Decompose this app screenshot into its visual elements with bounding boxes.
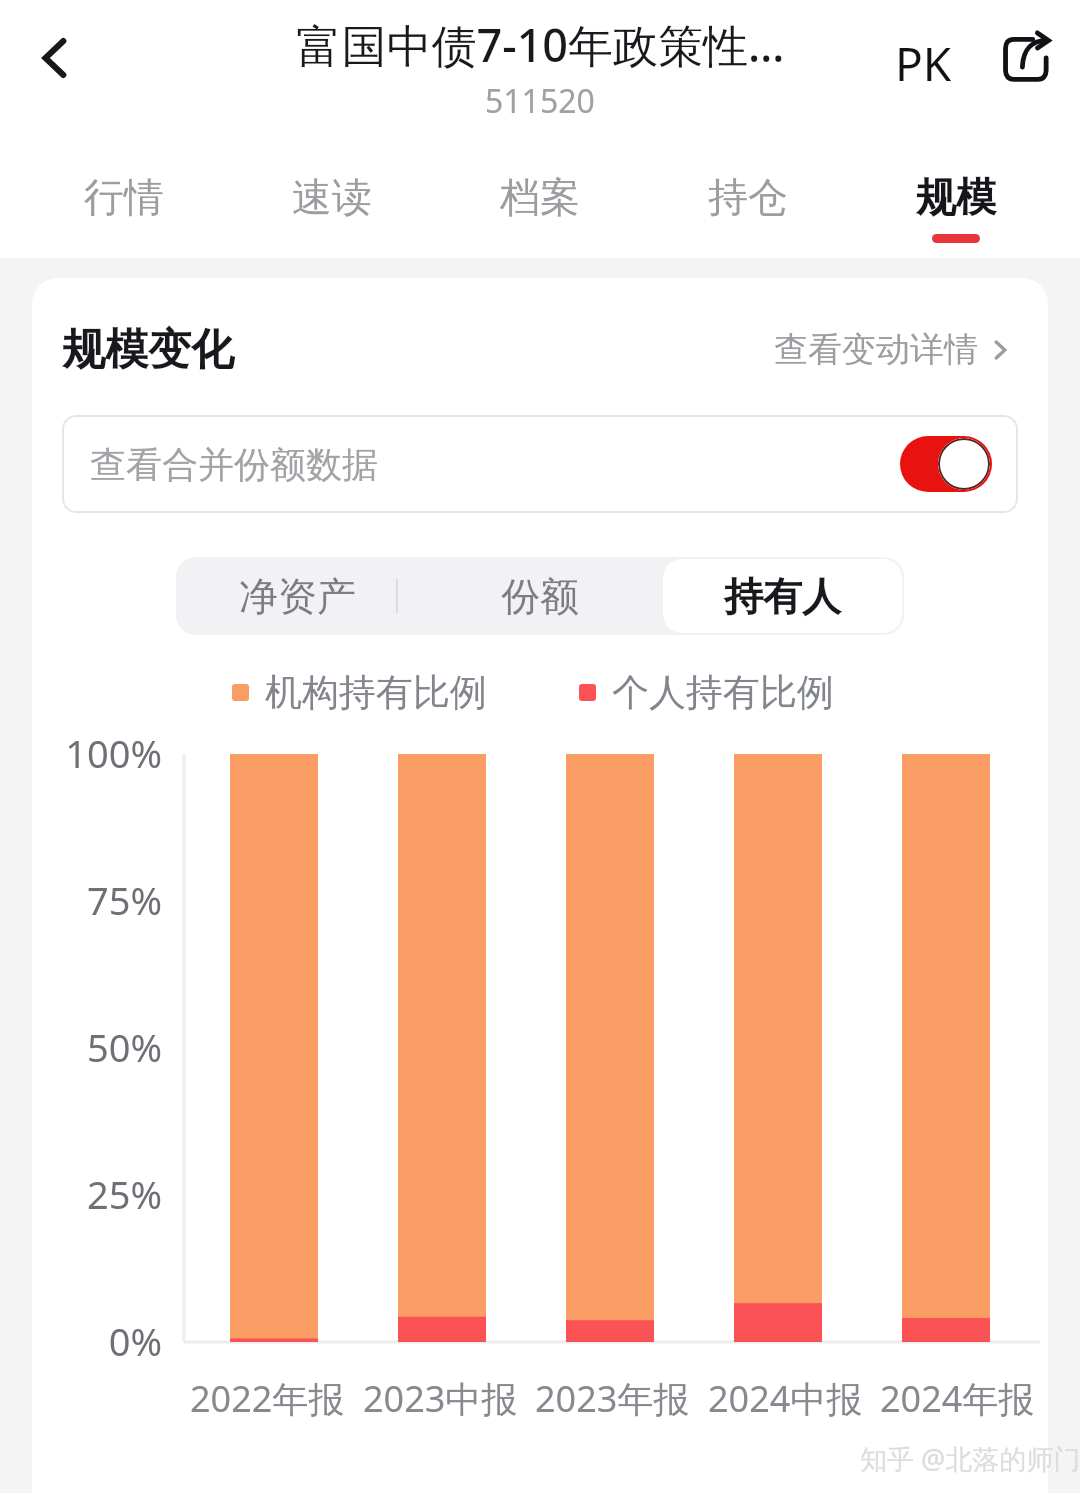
staticText: 查看变动详情 xyxy=(774,328,978,371)
button[interactable]: Back xyxy=(14,16,98,100)
staticText: 2023中报 xyxy=(363,1374,518,1423)
staticText: 份额 xyxy=(501,572,579,621)
staticText: 档案 xyxy=(500,172,580,222)
button[interactable]: 行情 xyxy=(84,150,164,234)
button[interactable]: 速读 xyxy=(292,150,372,234)
staticText: 查看合并份额数据 xyxy=(90,442,378,487)
staticText: 个人持有比例 xyxy=(612,669,834,716)
staticText: 净资产 xyxy=(239,572,356,621)
button[interactable]: 持有人 xyxy=(663,559,902,633)
staticText: 知乎 @北落的师门 xyxy=(860,1440,1080,1477)
staticText: 富国中债7-10年政策性… xyxy=(296,14,785,75)
staticText: 75% xyxy=(86,874,162,926)
staticText: 规模变化 xyxy=(62,323,234,377)
staticText: 行情 xyxy=(84,172,164,222)
staticText: 100% xyxy=(65,727,162,779)
staticText: 规模 xyxy=(916,172,996,222)
staticText: 50% xyxy=(86,1021,162,1073)
button[interactable]: 查看变动详情 xyxy=(774,328,1012,371)
button[interactable] xyxy=(900,436,992,492)
button[interactable]: 净资产 xyxy=(176,557,418,635)
staticText: 速读 xyxy=(292,172,372,222)
staticText: 2023年报 xyxy=(535,1374,690,1423)
staticText: 511520 xyxy=(485,79,595,123)
button[interactable]: 档案 xyxy=(500,150,580,234)
staticText: 机构持有比例 xyxy=(265,669,487,716)
button[interactable]: 查看合并份额数据 xyxy=(62,415,1018,513)
staticText: 2024中报 xyxy=(708,1374,863,1423)
staticText: 0% xyxy=(108,1315,162,1367)
staticText: PK xyxy=(895,32,952,95)
button[interactable]: Share xyxy=(988,20,1066,98)
staticText: 25% xyxy=(86,1168,162,1220)
button[interactable]: 规模 xyxy=(916,150,996,243)
staticText: 2022年报 xyxy=(190,1374,345,1423)
button[interactable]: 份额 xyxy=(418,557,661,635)
staticText: 2024年报 xyxy=(880,1374,1035,1423)
button[interactable]: 持仓 xyxy=(708,150,788,234)
button[interactable]: PK xyxy=(895,32,952,95)
staticText: 持仓 xyxy=(708,172,788,222)
staticText: 持有人 xyxy=(724,572,841,621)
